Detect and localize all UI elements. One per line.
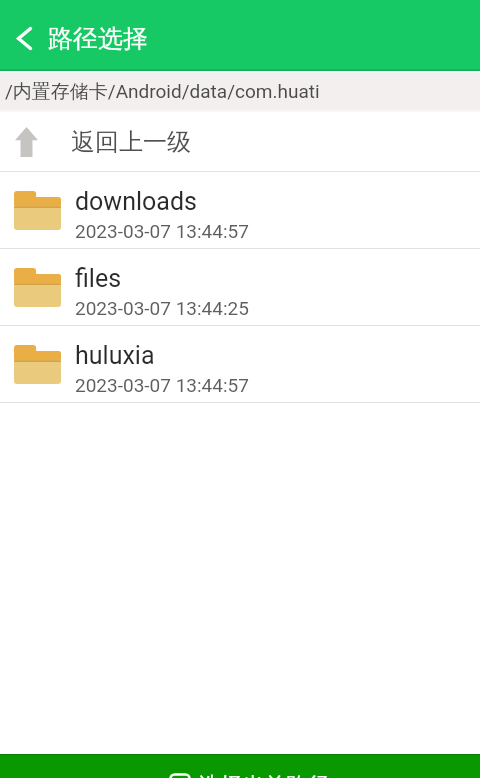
staticText: 路径选择 <box>48 23 148 54</box>
button[interactable]: 路径选择 <box>0 3 480 74</box>
button[interactable]: huluxia <box>0 326 480 402</box>
button[interactable]: 选择当前路径 <box>0 754 480 778</box>
staticText: files <box>75 264 122 293</box>
staticText: 2023-03-07 13:44:57 <box>75 374 249 396</box>
staticText: huluxia <box>75 341 155 370</box>
staticText: 2023-03-07 13:44:57 <box>75 220 249 242</box>
staticText: downloads <box>75 187 197 216</box>
staticText: 2023-03-07 13:44:25 <box>75 297 249 319</box>
staticText: /内置存储卡/Android/data/com.huati <box>5 80 320 104</box>
button[interactable]: files <box>0 249 480 325</box>
button[interactable]: 返回上一级 <box>0 113 480 171</box>
button[interactable]: downloads <box>0 172 480 248</box>
staticText: 返回上一级 <box>71 127 191 157</box>
staticText: 选择当前路径 <box>198 772 330 778</box>
